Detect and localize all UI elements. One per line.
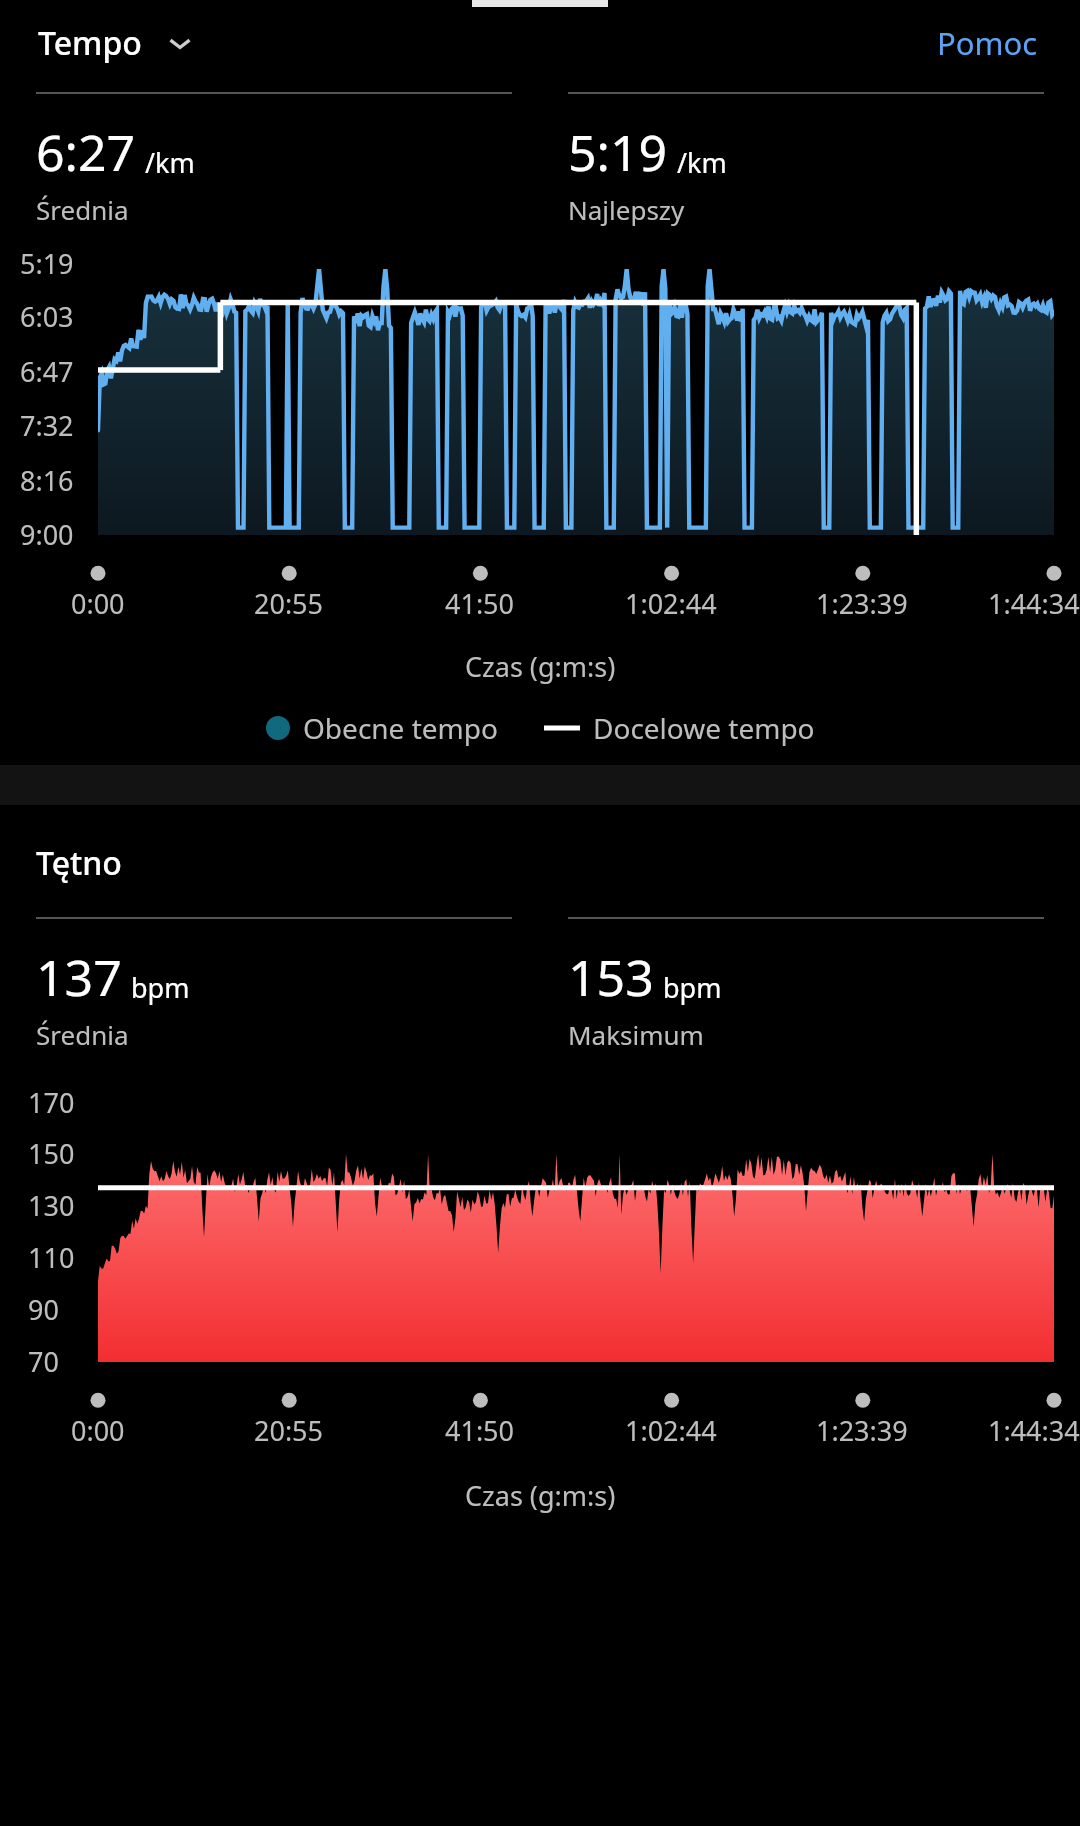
staticText: 1:02:44 [625,585,717,622]
staticText: Maksimum [568,1017,704,1052]
staticText: 137 [36,943,122,1011]
other: Zmień wykres [166,29,194,57]
staticText: 5:19 [568,118,668,186]
staticText: 7:32 [20,407,74,444]
button[interactable]: Tempo [36,15,196,71]
staticText: 150 [28,1135,75,1172]
staticText: 41:50 [445,1412,515,1449]
staticText: 0:00 [71,1412,125,1449]
staticText: 1:23:39 [816,1412,908,1449]
staticText: bpm [131,969,190,1006]
staticText: Tętno [36,841,122,885]
staticText: 170 [28,1084,75,1121]
staticText: 41:50 [445,585,515,622]
staticText: Docelowe tempo [593,709,815,747]
staticText: 70 [28,1343,59,1380]
staticText: Czas (g:m:s) [465,1477,616,1514]
staticText: 8:16 [20,462,74,499]
staticText: Tempo [38,21,142,65]
staticText: Średnia [36,1017,129,1052]
staticText: 1:23:39 [816,585,908,622]
button[interactable]: 137 [36,917,512,1052]
staticText: 6:03 [20,298,74,335]
staticText: 130 [28,1187,75,1224]
staticText: 20:55 [254,585,324,622]
staticText: 6:47 [20,353,74,390]
staticText: 110 [28,1239,75,1276]
staticText: Najlepszy [568,192,685,227]
staticText: 5:19 [20,245,74,282]
button[interactable]: 5:19 [568,92,1044,227]
staticText: 1:02:44 [625,1412,717,1449]
staticText: /km [145,144,195,181]
staticText: 1:44:34 [988,1412,1080,1449]
staticText: 0:00 [71,585,125,622]
button[interactable]: 6:27 [36,92,512,227]
staticText: Czas (g:m:s) [465,648,616,685]
staticText: bpm [663,969,722,1006]
button[interactable]: 153 [568,917,1044,1052]
staticText: 90 [28,1291,59,1328]
staticText: Obecne tempo [303,709,498,747]
button[interactable]: Pomoc [931,16,1044,70]
staticText: 9:00 [20,516,74,553]
staticText: Pomoc [937,22,1038,64]
staticText: 1:44:34 [988,585,1080,622]
staticText: Średnia [36,192,129,227]
staticText: 20:55 [254,1412,324,1449]
staticText: 153 [568,943,654,1011]
staticText: /km [677,144,727,181]
staticText: 6:27 [36,118,136,186]
